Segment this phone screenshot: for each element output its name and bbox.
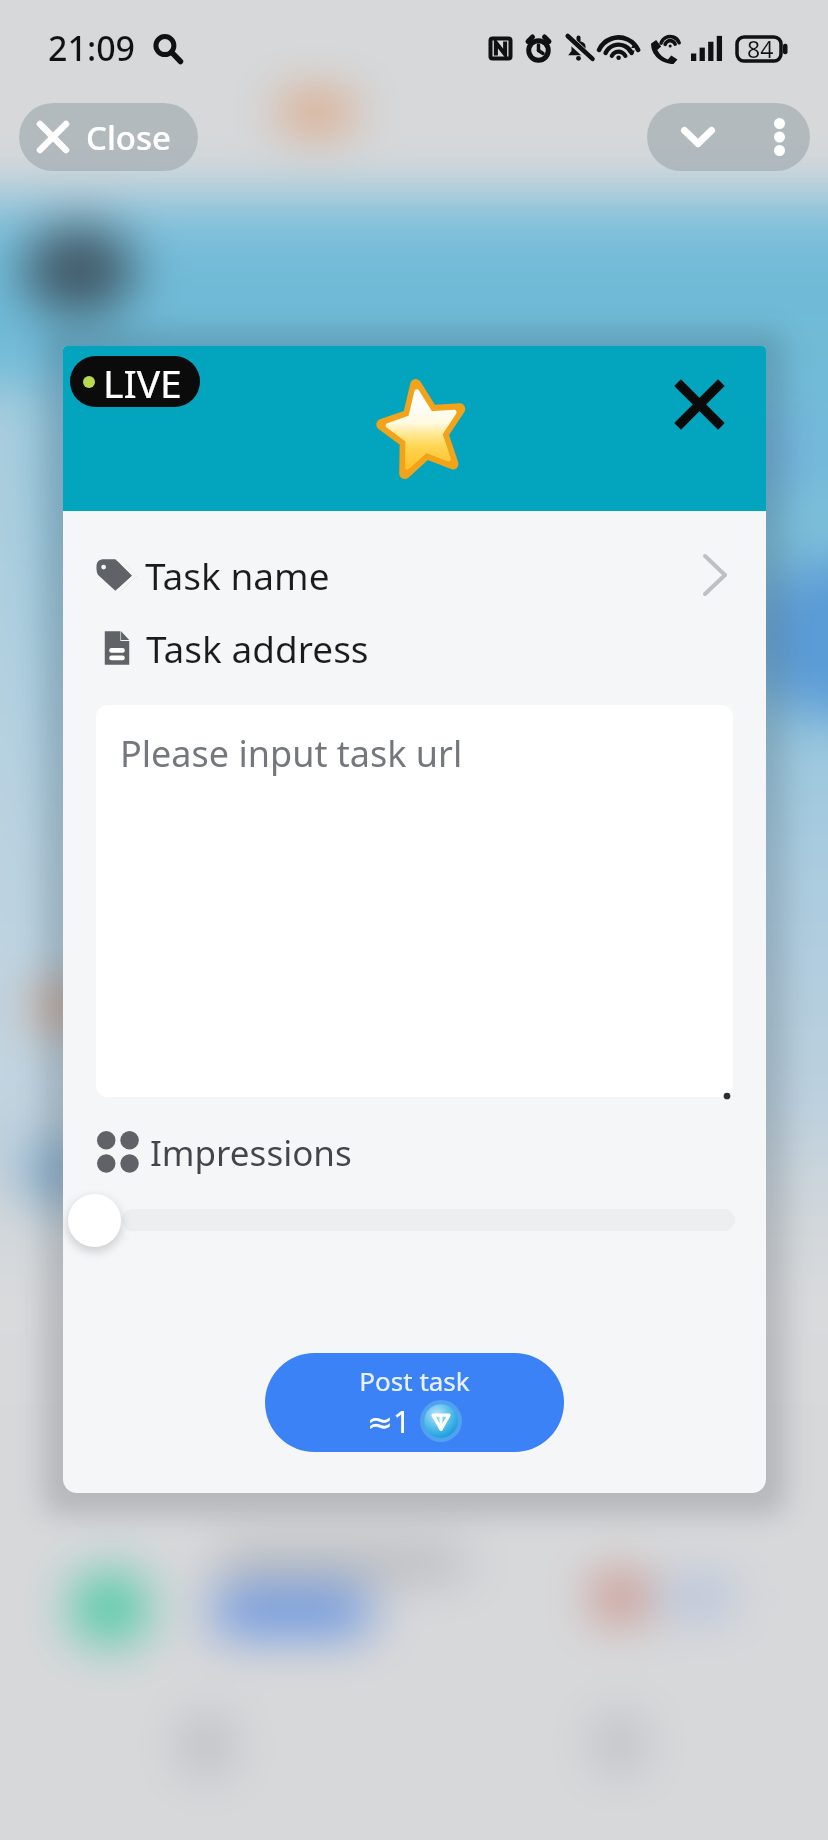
- button[interactable]: Please input task url: [96, 705, 733, 1097]
- button[interactable]: Task address: [63, 618, 766, 678]
- button[interactable]: Close dialog: [654, 359, 744, 449]
- staticText: ≈1: [367, 1400, 411, 1442]
- button[interactable]: Close: [19, 103, 198, 171]
- staticText: LIVE: [103, 356, 182, 407]
- staticText: Please input task url: [120, 729, 463, 778]
- button[interactable]: Post task: [265, 1353, 564, 1452]
- button[interactable]: LIVE: [70, 356, 200, 407]
- staticText: Close: [86, 115, 172, 160]
- staticText: 21:09: [48, 25, 136, 71]
- staticText: 84: [747, 33, 774, 64]
- button[interactable]: Task name: [63, 545, 766, 605]
- staticText: Impressions: [150, 1129, 352, 1177]
- button[interactable]: More options: [748, 103, 810, 171]
- staticText: Task address: [146, 623, 369, 673]
- button[interactable]: Impressions slider: [68, 1194, 121, 1247]
- staticText: Post task: [359, 1363, 470, 1398]
- button[interactable]: Collapse: [647, 103, 748, 171]
- staticText: Task name: [145, 550, 330, 600]
